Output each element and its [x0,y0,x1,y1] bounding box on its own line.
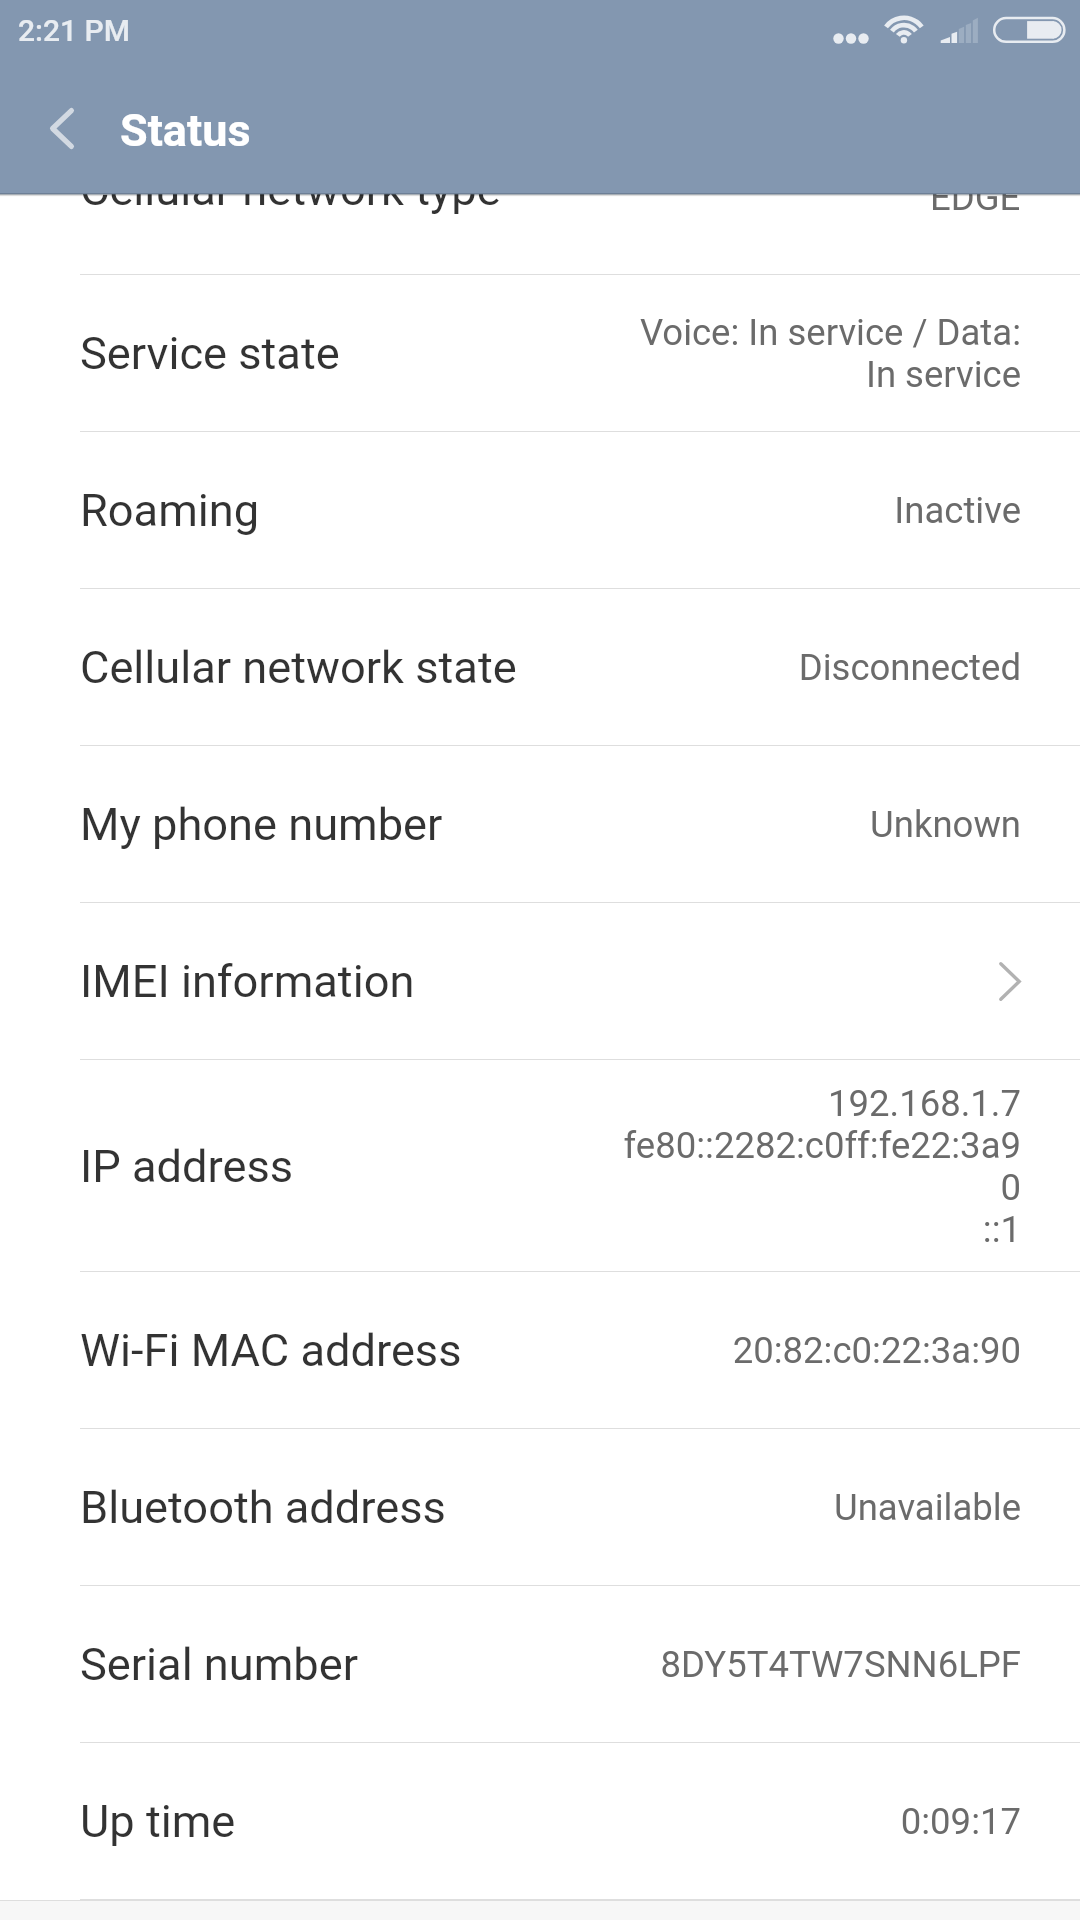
staticText: Service state [80,327,340,380]
staticText: Voice: In service / Data: In service [639,311,1021,396]
button[interactable]: Cellular network state [0,589,1080,746]
button[interactable]: Service state [0,275,1080,432]
staticText: EDGE [930,176,1021,219]
staticText: Roaming [80,484,260,537]
staticText: Wi-Fi MAC address [80,1324,462,1377]
staticText: Status [120,104,251,157]
staticText: IMEI information [80,955,415,1008]
staticText: 2:21 PM [18,13,131,48]
staticText: Up time [80,1795,236,1848]
staticText: 0:09:17 [900,1800,1021,1843]
staticText: Disconnected [798,646,1021,689]
staticText: My phone number [80,798,443,851]
staticText: Unknown [870,803,1021,846]
button[interactable]: Bluetooth address [0,1429,1080,1586]
staticText: Unavailable [833,1486,1021,1529]
staticText: Inactive [894,489,1021,532]
staticText: 20:82:c0:22:3a:90 [732,1329,1021,1372]
button[interactable]: IMEI information [0,903,1080,1060]
staticText: Cellular network state [80,641,517,694]
button[interactable]: Up time [0,1743,1080,1900]
staticText: IP address [80,1140,294,1193]
button[interactable]: My phone number [0,746,1080,903]
staticText: Bluetooth address [80,1481,446,1534]
staticText: 192.168.1.7 fe80::2282:c0ff:fe22:3a9 0 :… [623,1082,1021,1251]
button[interactable]: IP address [0,1060,1080,1272]
staticText: Cellular network type [80,163,501,216]
button[interactable]: Cellular network type [0,194,1080,275]
button[interactable]: Roaming [0,432,1080,589]
button[interactable]: Serial number [0,1586,1080,1743]
button[interactable]: Back [0,58,122,194]
staticText: Serial number [80,1638,359,1691]
staticText: 8DY5T4TW7SNN6LPF [660,1643,1021,1686]
button[interactable]: Wi-Fi MAC address [0,1272,1080,1429]
